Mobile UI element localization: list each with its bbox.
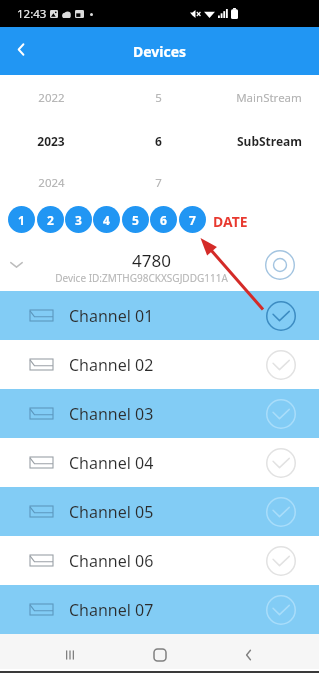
- button[interactable]: Select device: [263, 248, 297, 282]
- button[interactable]: 1: [8, 206, 35, 233]
- button[interactable]: 4: [93, 206, 120, 233]
- staticText: 2022: [38, 90, 65, 106]
- button[interactable]: Channel 04: [0, 438, 319, 487]
- staticText: 3: [75, 212, 82, 228]
- staticText: 2: [47, 212, 54, 228]
- button[interactable]: Channel 07: [0, 585, 319, 634]
- button[interactable]: Channel 06: [0, 536, 319, 585]
- button[interactable]: 7: [179, 206, 206, 233]
- staticText: 2023: [37, 133, 65, 149]
- button[interactable]: 6: [150, 206, 177, 233]
- staticText: SubStream: [237, 133, 302, 149]
- staticText: MainStream: [236, 90, 302, 106]
- staticText: Channel 03: [69, 403, 154, 425]
- staticText: Device ID:ZMTHG98CKXSGJDDG111A: [55, 271, 228, 285]
- staticText: Devices: [133, 42, 187, 61]
- button[interactable]: 3: [65, 206, 92, 233]
- staticText: 6: [160, 212, 167, 228]
- staticText: 12:43: [17, 6, 47, 22]
- staticText: 4780: [132, 249, 171, 272]
- staticText: Channel 06: [69, 550, 154, 572]
- button[interactable]: Channel 05: [0, 487, 319, 536]
- staticText: Channel 02: [69, 354, 154, 376]
- button[interactable]: Back: [229, 637, 269, 672]
- staticText: 6: [155, 133, 162, 149]
- staticText: 1: [18, 212, 25, 228]
- button[interactable]: Channel 01: [0, 291, 319, 340]
- button[interactable]: Channel 02: [0, 340, 319, 389]
- staticText: Channel 05: [69, 501, 154, 523]
- staticText: DATE: [213, 212, 248, 230]
- staticText: Channel 07: [69, 599, 154, 621]
- staticText: Channel 04: [69, 452, 154, 474]
- staticText: 5: [155, 90, 162, 106]
- button[interactable]: 2: [37, 206, 64, 233]
- staticText: 4: [103, 212, 110, 228]
- button[interactable]: Home: [140, 637, 180, 672]
- staticText: 2024: [38, 175, 65, 191]
- button[interactable]: Channel 03: [0, 389, 319, 438]
- staticText: Channel 01: [69, 305, 154, 327]
- staticText: 5: [132, 212, 139, 228]
- staticText: 7: [189, 212, 196, 228]
- button[interactable]: Recents: [50, 637, 90, 672]
- button[interactable]: Back: [0, 30, 42, 72]
- staticText: 7: [155, 175, 162, 191]
- button[interactable]: 5: [122, 206, 149, 233]
